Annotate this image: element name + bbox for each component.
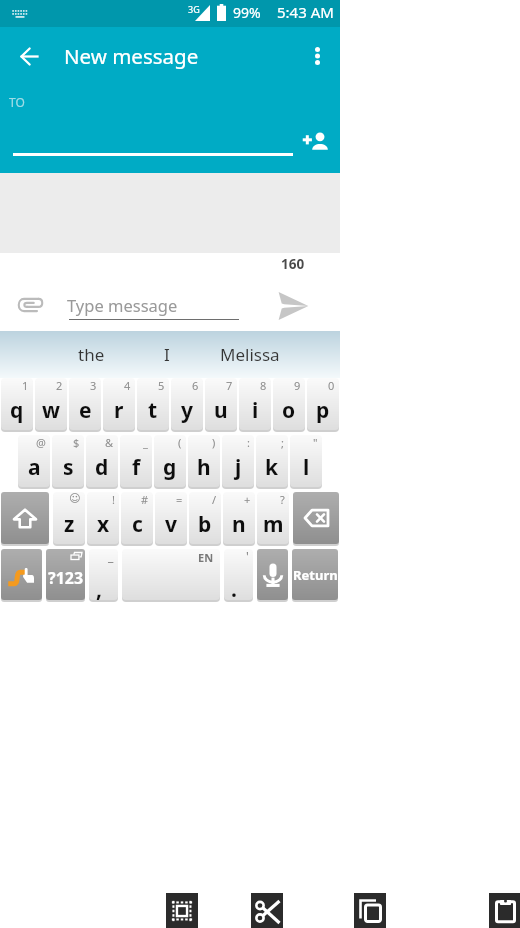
button[interactable]: Voice input (257, 549, 288, 600)
staticText: TO (9, 94, 25, 110)
button[interactable]: 8 (239, 378, 271, 430)
staticText: 1 (22, 378, 29, 393)
staticText: l (303, 453, 310, 482)
button[interactable]: 1 (1, 378, 33, 430)
button[interactable]: Cut (251, 893, 283, 928)
staticText: ; (281, 435, 284, 450)
staticText: g (163, 453, 177, 482)
staticText: d (95, 453, 109, 482)
button[interactable]: More options (295, 34, 339, 78)
staticText: 160 (281, 255, 305, 273)
staticText: m (263, 510, 284, 539)
staticText: s (63, 453, 74, 482)
staticText: : (247, 435, 250, 450)
staticText: # (141, 492, 149, 507)
staticText: x (97, 510, 110, 539)
button[interactable]: & (86, 435, 118, 487)
button[interactable]: Add contact (299, 125, 333, 159)
button[interactable]: Paste (489, 893, 520, 928)
button[interactable]: 4 (103, 378, 135, 430)
button[interactable]: ! (87, 492, 119, 544)
staticText: I (164, 343, 170, 366)
staticText: 7 (226, 378, 233, 393)
button[interactable]: Send (272, 285, 314, 327)
button[interactable]: ' (224, 549, 253, 600)
button[interactable]: @ (18, 435, 50, 487)
staticText: ) (212, 435, 216, 450)
staticText: ? (280, 492, 285, 507)
staticText: the (78, 343, 105, 366)
button[interactable]: : (222, 435, 254, 487)
staticText: Return (293, 566, 338, 584)
button[interactable]: 7 (205, 378, 237, 430)
staticText: 99% (233, 3, 261, 22)
staticText: p (316, 396, 330, 425)
button[interactable]: " (290, 435, 322, 487)
staticText: ' (246, 549, 249, 564)
staticText: f (132, 453, 141, 482)
staticText: ( (178, 435, 182, 450)
staticText: _ (108, 549, 114, 564)
staticText: . (231, 575, 237, 600)
button[interactable]: ( (154, 435, 186, 487)
button[interactable]: Backspace (293, 492, 339, 544)
button[interactable]: Melissa (203, 331, 296, 378)
button[interactable]: the (51, 331, 131, 378)
button[interactable]: _ (89, 549, 118, 600)
staticText: New message (64, 42, 199, 70)
staticText: q (10, 396, 24, 425)
staticText: _ (143, 435, 148, 450)
button[interactable]: Symbols (46, 549, 85, 600)
staticText: b (198, 510, 212, 539)
staticText: y (181, 396, 193, 425)
button[interactable]: 3 (69, 378, 101, 430)
staticText: u (214, 396, 228, 425)
staticText: z (64, 510, 75, 539)
button[interactable]: Attach (12, 287, 48, 323)
staticText: v (165, 510, 177, 539)
button[interactable]: 2 (35, 378, 67, 430)
button[interactable]: ? (257, 492, 289, 544)
button[interactable]: Back (8, 34, 52, 78)
button[interactable]: Swype (1, 549, 42, 600)
staticText: 2 (56, 378, 63, 393)
staticText: t (148, 396, 158, 425)
staticText: h (197, 453, 211, 482)
staticText: ?123 (48, 567, 84, 589)
button[interactable]: ☺ (53, 492, 85, 544)
staticText: & (105, 435, 114, 450)
button[interactable]: 6 (171, 378, 203, 430)
staticText: Type message (67, 294, 178, 316)
staticText: @ (36, 435, 46, 450)
button[interactable]: / (189, 492, 221, 544)
staticText: EN (198, 550, 214, 565)
button[interactable]: I (131, 331, 203, 378)
button[interactable]: 5 (137, 378, 169, 430)
staticText: 9 (294, 378, 301, 393)
staticText: e (79, 396, 92, 425)
button[interactable]: Copy (354, 893, 386, 928)
staticText: Melissa (220, 343, 280, 366)
button[interactable]: + (223, 492, 255, 544)
staticText: $ (73, 435, 80, 450)
staticText: , (96, 575, 102, 600)
button[interactable]: $ (52, 435, 84, 487)
button[interactable]: 0 (307, 378, 339, 430)
button[interactable]: 9 (273, 378, 305, 430)
button[interactable]: ; (256, 435, 288, 487)
staticText: k (265, 453, 279, 482)
button[interactable]: Space (122, 549, 220, 600)
staticText: 8 (260, 378, 267, 393)
staticText: j (235, 453, 242, 482)
button[interactable]: _ (120, 435, 152, 487)
staticText: ! (112, 492, 115, 507)
button[interactable]: Return (292, 549, 338, 600)
staticText: w (42, 396, 60, 425)
button[interactable]: Select all (166, 893, 198, 928)
staticText: i (252, 396, 259, 425)
button[interactable]: # (121, 492, 153, 544)
button[interactable]: = (155, 492, 187, 544)
button[interactable]: ) (188, 435, 220, 487)
button[interactable]: Shift (1, 492, 49, 544)
staticText: 4 (124, 378, 131, 393)
